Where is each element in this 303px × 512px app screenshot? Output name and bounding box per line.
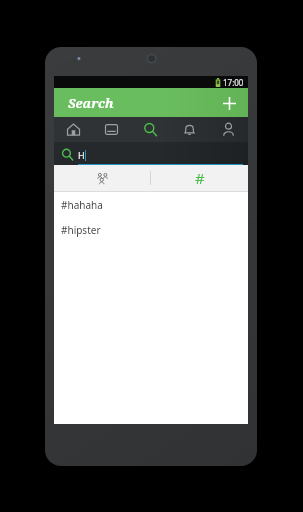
button[interactable]: Hashtags (151, 165, 248, 191)
button[interactable]: Add (218, 92, 240, 114)
button[interactable]: #hipster (54, 217, 248, 242)
staticText: # (195, 168, 205, 188)
button[interactable]: #hahaha (54, 192, 248, 217)
staticText: 17:00 (223, 77, 244, 88)
button[interactable]: Inbox (92, 117, 131, 142)
button[interactable]: Profile (209, 117, 248, 142)
staticText: Search (68, 94, 114, 112)
staticText: #hahaha (61, 198, 103, 212)
button[interactable]: H (54, 142, 248, 165)
staticText: #hipster (61, 223, 101, 237)
button[interactable]: Home (54, 117, 92, 142)
staticText: H (78, 149, 85, 161)
button[interactable]: People (54, 165, 150, 191)
button[interactable]: Search (131, 117, 170, 142)
button[interactable]: Notifications (170, 117, 209, 142)
